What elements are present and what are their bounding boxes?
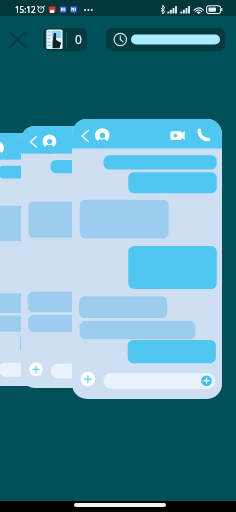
staticText: 0	[75, 31, 82, 47]
button[interactable]: 0	[43, 28, 87, 51]
button[interactable]: Chat conversation preview	[21, 126, 162, 388]
button[interactable]: Timer	[106, 28, 225, 51]
button[interactable]: Chat conversation preview	[72, 119, 222, 399]
button[interactable]: Chat conversation preview	[0, 133, 106, 386]
button[interactable]: Close	[5, 27, 30, 52]
staticText: 15:12	[15, 4, 36, 15]
